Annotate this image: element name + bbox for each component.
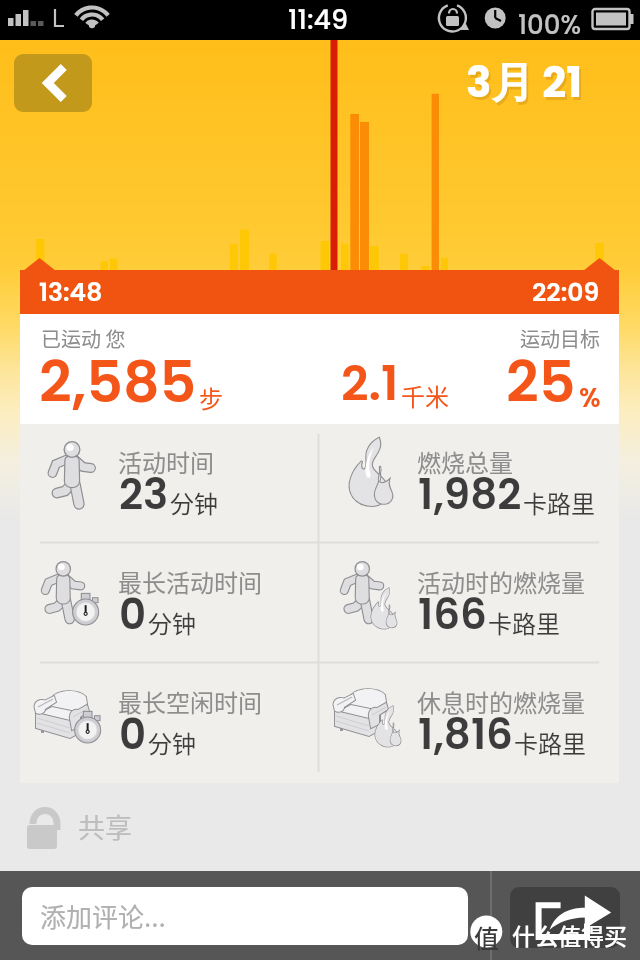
button[interactable]: 燃烧总量 [319,424,618,543]
button[interactable]: 最长空闲时间 [20,664,319,783]
button[interactable]: 最长活动时间 [20,544,319,663]
staticText: 3月 21 [468,56,585,115]
staticText: 1,982 [418,465,522,524]
staticText: 分钟 [170,485,218,520]
staticText: 最长活动时间 [118,564,262,599]
staticText: 活动时间 [118,444,214,479]
staticText: 卡路里 [523,485,595,520]
staticText: 卡路里 [514,725,586,760]
staticText: 燃烧总量 [417,444,513,479]
button[interactable]: 添加评论... [22,887,468,945]
staticText: 卡路里 [488,605,560,640]
staticText: 已运动 您 [41,324,126,353]
staticText: 100% [518,7,582,43]
button[interactable]: 活动时间 [20,424,319,543]
button[interactable]: Back [14,54,92,112]
staticText: 活动时的燃烧量 [417,564,585,599]
staticText: 166 [418,585,487,644]
staticText: 3月 21 [466,53,583,112]
staticText: 千米 [401,378,449,413]
staticText: 步 [199,380,223,415]
staticText: % [579,380,601,416]
staticText: 2.1 [341,350,399,417]
staticText: 11:49 [288,1,349,39]
staticText: 分钟 [148,605,196,640]
staticText: 25 [506,342,576,422]
staticText: 2,585 [39,342,197,422]
button[interactable]: 休息时的燃烧量 [319,664,618,783]
staticText: 13:48 [39,275,103,310]
staticText: 最长空闲时间 [118,684,262,719]
staticText: 分钟 [148,725,196,760]
staticText: 0 [119,585,147,644]
staticText: 运动目标 [520,324,600,353]
button[interactable]: 活动时的燃烧量 [319,544,618,663]
staticText: 23 [119,465,169,524]
staticText: 1,816 [418,705,513,764]
staticText: 22:09 [532,275,600,310]
staticText: 0 [119,705,147,764]
staticText: 共享 [78,807,132,846]
button[interactable]: 共享 [22,798,132,854]
staticText: 添加评论... [40,897,166,935]
staticText: 什么值得买 [512,918,627,951]
button[interactable]: Share [510,887,620,948]
staticText: 值 [474,919,500,955]
staticText: 休息时的燃烧量 [417,684,585,719]
